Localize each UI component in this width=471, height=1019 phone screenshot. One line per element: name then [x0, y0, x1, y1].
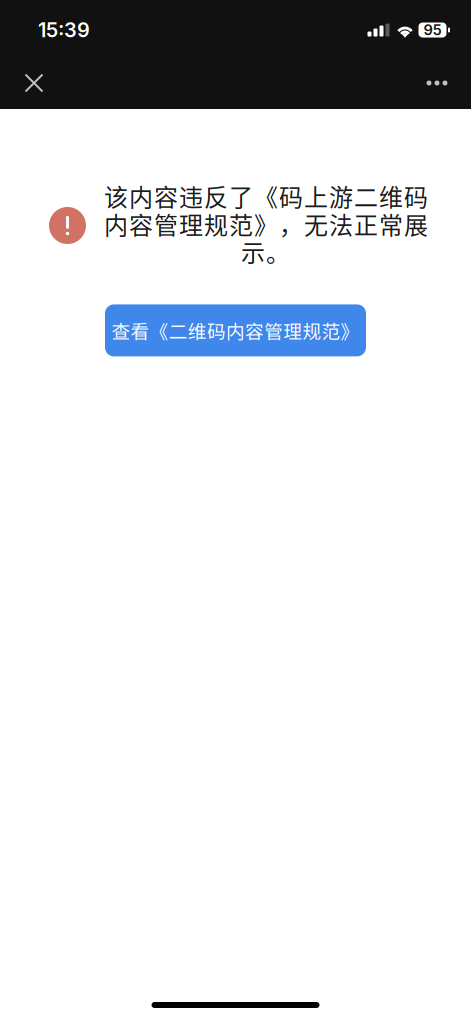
staticText: 查看《二维码内容管理规范》	[111, 317, 360, 344]
staticText: 95	[423, 21, 441, 39]
staticText: 该内容违反了《码上游二维码 内容管理规范》，无法正常展 示。	[103, 182, 427, 265]
button[interactable]: More options	[411, 56, 463, 110]
button[interactable]: 查看《二维码内容管理规范》	[105, 304, 366, 356]
staticText: 15:39	[38, 18, 90, 42]
button[interactable]: Close	[8, 56, 60, 110]
